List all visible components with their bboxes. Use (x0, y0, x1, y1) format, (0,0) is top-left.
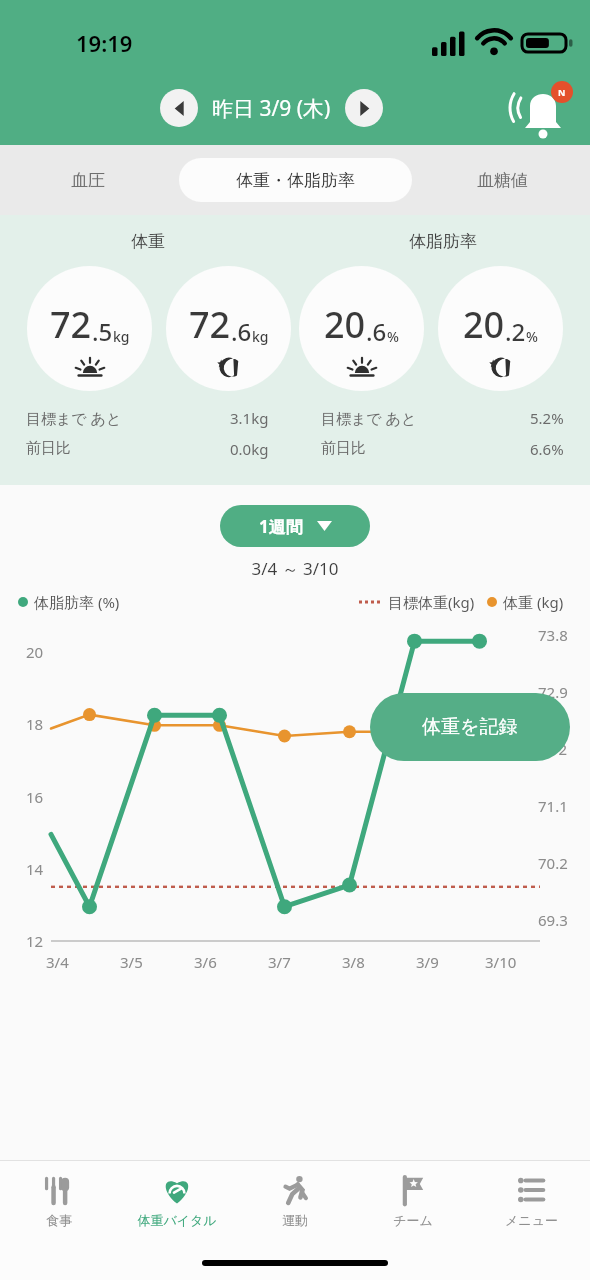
staticText: 体重バイタル (137, 1212, 217, 1228)
staticText: % (387, 327, 399, 346)
staticText: 72.9 (538, 682, 568, 702)
button[interactable]: Previous day (160, 89, 198, 127)
button[interactable]: 体重を記録 (370, 693, 570, 761)
staticText: 71.1 (538, 796, 568, 816)
staticText: 体重 (kg) (503, 592, 564, 612)
staticText: 運動 (282, 1212, 308, 1228)
staticText: 73.8 (538, 625, 568, 645)
button[interactable]: 血糖値 (414, 145, 590, 215)
staticText: 5.2% (530, 408, 564, 428)
staticText: 14 (26, 859, 44, 879)
staticText: .6 (231, 315, 252, 348)
staticText: 3/6 (194, 952, 217, 972)
staticText: 目標まで あと (26, 408, 122, 428)
staticText: 6.6% (530, 439, 564, 459)
staticText: 20 (324, 300, 366, 349)
button[interactable]: 血圧 (0, 145, 176, 215)
button[interactable]: 体重バイタル (118, 1161, 236, 1246)
staticText: 体脂肪率 (409, 231, 477, 252)
staticText: 16 (26, 787, 44, 807)
staticText: N (558, 86, 566, 98)
staticText: 3/4 ～ 3/10 (0, 557, 590, 580)
staticText: 72 (550, 739, 568, 759)
staticText: 昨日 3/9 (木) (212, 94, 331, 123)
staticText: 18 (26, 714, 44, 734)
staticText: 3/10 (485, 952, 517, 972)
staticText: 体重を記録 (422, 715, 518, 739)
staticText: 20 (26, 642, 44, 662)
button[interactable]: 72 (166, 266, 291, 391)
staticText: 目標体重(kg) (388, 592, 475, 612)
staticText: kg (113, 327, 130, 346)
staticText: 3/7 (268, 952, 291, 972)
staticText: 0.0kg (230, 439, 269, 459)
staticText: 19:19 (76, 28, 133, 58)
button[interactable]: 食事 (0, 1161, 118, 1246)
staticText: 体重 (131, 231, 165, 252)
button[interactable]: Next day (345, 89, 383, 127)
staticText: % (526, 327, 538, 346)
staticText: 3/8 (342, 952, 365, 972)
button[interactable]: メニュー (472, 1161, 590, 1246)
staticText: .6 (366, 315, 387, 348)
staticText: 体重・体脂肪率 (236, 170, 355, 191)
button[interactable]: Notifications (518, 81, 568, 131)
staticText: 体脂肪率 (%) (34, 592, 120, 612)
staticText: 70.2 (538, 853, 568, 873)
staticText: 目標まで あと (321, 408, 417, 428)
button[interactable]: 72 (27, 266, 152, 391)
staticText: .5 (92, 315, 113, 348)
staticText: 72 (50, 300, 92, 349)
staticText: 食事 (46, 1212, 72, 1228)
staticText: 3/9 (416, 952, 439, 972)
staticText: 血圧 (71, 170, 105, 191)
staticText: 3.1kg (230, 408, 269, 428)
staticText: kg (252, 327, 269, 346)
button[interactable]: 1週間 (220, 505, 370, 547)
staticText: 血糖値 (477, 170, 528, 191)
staticText: 前日比 (321, 439, 366, 458)
staticText: 3/5 (120, 952, 143, 972)
button[interactable]: チーム (354, 1161, 472, 1246)
button[interactable]: 運動 (236, 1161, 354, 1246)
staticText: 72 (189, 300, 231, 349)
staticText: 69.3 (538, 910, 568, 930)
staticText: 12 (26, 931, 44, 951)
staticText: チーム (393, 1212, 433, 1228)
button[interactable]: 20 (438, 266, 563, 391)
staticText: 20 (463, 300, 505, 349)
staticText: .2 (505, 315, 526, 348)
staticText: 3/4 (46, 952, 69, 972)
staticText: 1週間 (259, 515, 303, 538)
staticText: メニュー (505, 1212, 558, 1228)
button[interactable]: 体重・体脂肪率 (179, 158, 412, 202)
staticText: 前日比 (26, 439, 71, 458)
button[interactable]: 20 (299, 266, 424, 391)
